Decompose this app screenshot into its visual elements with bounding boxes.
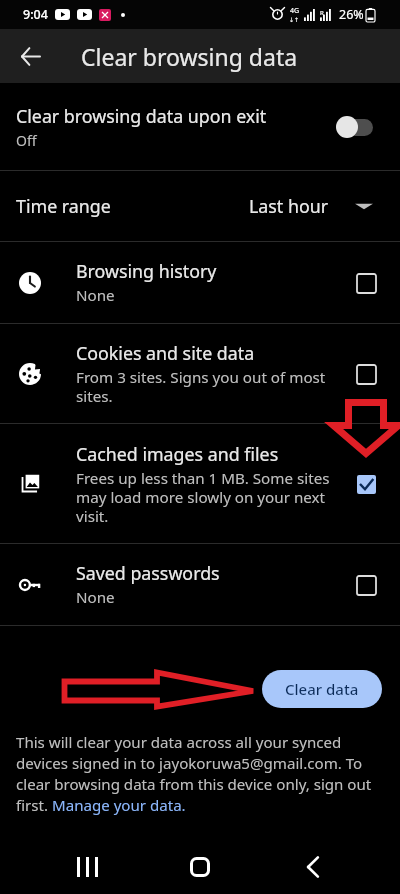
button[interactable]: Back	[0, 29, 62, 83]
button[interactable]: Clear browsing data upon exit toggle	[336, 112, 382, 142]
staticText: Clear data	[285, 679, 359, 699]
staticText: 26%	[339, 6, 364, 23]
staticText: None	[76, 587, 115, 608]
staticText: Last hour	[249, 194, 329, 218]
button[interactable]: Cached images and files	[0, 424, 400, 543]
button[interactable]: Checkbox	[353, 270, 379, 296]
staticText: Frees up less than 1 MB. Some sites may …	[76, 468, 338, 526]
button[interactable]: Home	[179, 846, 221, 888]
staticText: 9:04	[23, 6, 48, 23]
button[interactable]: Clear data	[262, 670, 382, 708]
staticText: R	[320, 9, 324, 17]
staticText: From 3 sites. Signs you out of most site…	[76, 367, 338, 406]
staticText: 4G	[290, 6, 300, 16]
staticText: Browsing history	[76, 259, 217, 283]
button[interactable]: Time range	[0, 171, 400, 241]
button[interactable]: Cookies and site data	[0, 324, 400, 423]
staticText: Cached images and files	[76, 442, 279, 466]
staticText: ↓↑	[289, 16, 300, 23]
button[interactable]: Checkbox	[353, 361, 379, 387]
staticText: Clear browsing data upon exit	[16, 104, 267, 128]
staticText: Off	[16, 131, 37, 150]
button[interactable]: Clear browsing data upon exit	[0, 83, 400, 170]
staticText: Cookies and site data	[76, 341, 255, 365]
staticText: Saved passwords	[76, 561, 220, 585]
staticText: Time range	[16, 194, 111, 218]
staticText: None	[76, 285, 115, 306]
staticText: Clear browsing data	[81, 41, 298, 72]
button[interactable]: Back	[292, 846, 334, 888]
button[interactable]: Saved passwords	[0, 544, 400, 625]
staticText: This will clear your data across all you…	[16, 732, 384, 816]
button[interactable]: Recents	[66, 846, 108, 888]
button[interactable]: Browsing history	[0, 242, 400, 323]
button[interactable]: Checkbox	[353, 572, 379, 598]
button[interactable]: Checkbox	[353, 471, 379, 497]
